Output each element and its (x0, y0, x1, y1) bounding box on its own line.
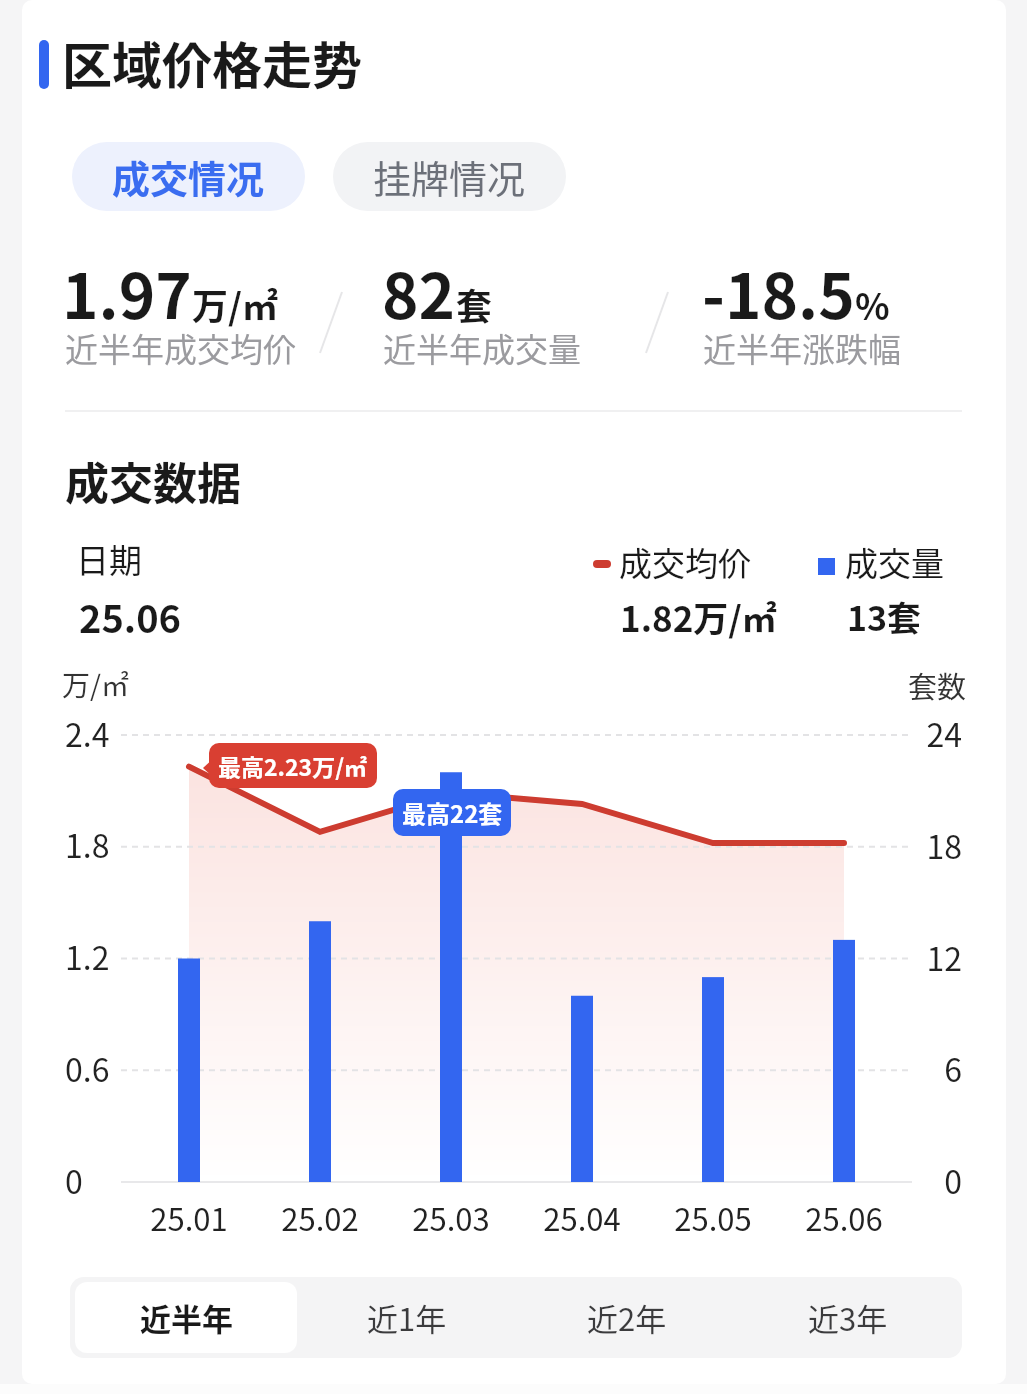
staticText: 成交均价 (619, 538, 751, 586)
staticText: -18.5 (702, 247, 855, 337)
staticText: 万/㎡ (62, 664, 129, 705)
staticText: 近半年成交均价 (65, 324, 296, 372)
staticText: 13套 (847, 592, 922, 641)
staticText: 1.8 (65, 821, 110, 867)
staticText: 2.4 (65, 710, 110, 756)
staticText: 25.04 (522, 1195, 642, 1240)
staticText: 套数 (908, 664, 967, 706)
staticText: 0 (862, 1157, 962, 1203)
staticText: 近1年 (367, 1295, 447, 1340)
staticText: 18 (862, 822, 962, 868)
button[interactable]: 挂牌情况 (333, 142, 566, 211)
staticText: 12 (862, 934, 962, 980)
staticText: 0 (65, 1157, 83, 1203)
staticText: 近3年 (808, 1295, 888, 1340)
staticText: 6 (862, 1045, 962, 1091)
button[interactable]: 近3年 (737, 1282, 959, 1353)
other: 成交均价图例 (593, 560, 611, 568)
staticText: 24 (862, 710, 962, 756)
staticText: % (855, 278, 890, 330)
staticText: 25.05 (653, 1195, 773, 1240)
button[interactable]: 近半年 (75, 1282, 297, 1353)
staticText: 万/㎡ (192, 278, 278, 330)
button[interactable]: 近2年 (516, 1282, 738, 1353)
staticText: 25.01 (129, 1195, 249, 1240)
staticText: 日期 (76, 535, 142, 583)
staticText: 25.02 (260, 1195, 380, 1240)
button[interactable]: 成交情况 (72, 142, 305, 211)
staticText: 1.97 (62, 247, 192, 337)
staticText: 近半年成交量 (383, 324, 581, 372)
staticText: 最高2.23万/㎡ (218, 749, 368, 782)
staticText: 0.6 (65, 1045, 110, 1091)
staticText: 最高22套 (402, 795, 503, 830)
staticText: 25.06 (784, 1195, 904, 1240)
staticText: 1.2 (65, 933, 110, 979)
staticText: 25.03 (391, 1195, 511, 1240)
staticText: 成交量 (845, 538, 944, 586)
staticText: 25.06 (79, 589, 182, 644)
staticText: 82 (382, 247, 456, 337)
staticText: 成交情况 (112, 149, 265, 204)
staticText: 近半年 (140, 1295, 233, 1340)
staticText: 成交数据 (65, 449, 241, 513)
staticText: 近半年涨跌幅 (703, 324, 901, 372)
staticText: 近2年 (587, 1295, 667, 1340)
button[interactable]: 近1年 (296, 1282, 518, 1353)
staticText: 套 (456, 278, 493, 330)
staticText: 1.82万/㎡ (620, 591, 777, 642)
staticText: 挂牌情况 (373, 149, 526, 204)
staticText: 区域价格走势 (62, 26, 362, 98)
